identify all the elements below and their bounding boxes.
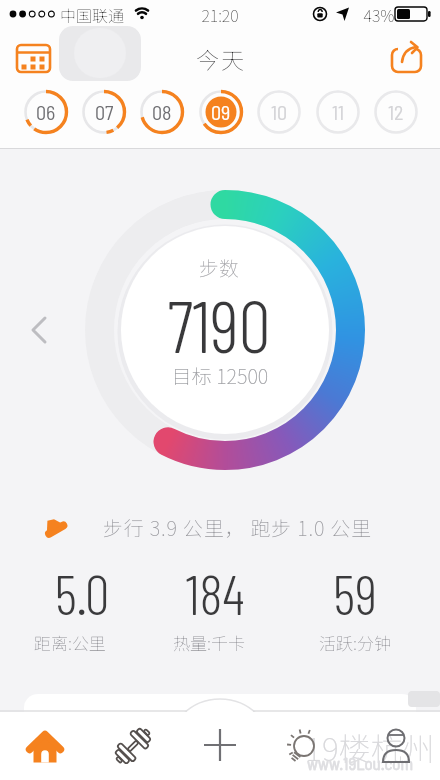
staticText: 5.0 <box>32 560 132 626</box>
button[interactable] <box>28 316 52 344</box>
button[interactable]: 06 <box>21 87 71 137</box>
staticText: 09 <box>211 100 231 124</box>
staticText: 活跃:分钟 <box>285 630 425 655</box>
button[interactable]: 09 <box>196 87 246 137</box>
button[interactable] <box>384 36 432 80</box>
staticText: 步行 3.9 公里， 跑步 1.0 公里 <box>103 513 403 542</box>
staticText: 7190 <box>119 281 319 367</box>
staticText: 目标 12500 <box>120 361 320 390</box>
staticText: 中国联通 <box>50 3 134 26</box>
staticText: 今天 <box>171 42 271 75</box>
staticText: 步数 <box>159 253 279 282</box>
button[interactable]: 08 <box>137 87 187 137</box>
staticText: 08 <box>152 100 172 124</box>
staticText: 59 <box>305 560 405 626</box>
staticText: 10 <box>271 100 288 124</box>
button[interactable] <box>22 724 68 770</box>
button[interactable] <box>8 36 58 80</box>
button[interactable] <box>190 715 250 775</box>
button[interactable]: 11 <box>313 87 363 137</box>
staticText: 距离:公里 <box>0 630 140 655</box>
button[interactable] <box>372 722 420 768</box>
button[interactable]: 07 <box>79 87 129 137</box>
staticText: 19楼杭州 <box>292 724 440 770</box>
staticText: 热量:千卡 <box>139 630 279 655</box>
staticText: 11 <box>332 100 344 124</box>
staticText: www.19Lou.com <box>288 753 432 773</box>
staticText: 21:20 <box>195 3 245 26</box>
staticText: 06 <box>36 100 56 124</box>
staticText: 12 <box>388 100 404 124</box>
button[interactable] <box>284 722 330 768</box>
staticText: 184 <box>165 560 265 626</box>
staticText: 43% <box>358 3 400 26</box>
button[interactable] <box>110 723 156 769</box>
button[interactable]: 10 <box>254 87 304 137</box>
staticText: 07 <box>95 100 114 124</box>
button[interactable]: 12 <box>371 87 421 137</box>
